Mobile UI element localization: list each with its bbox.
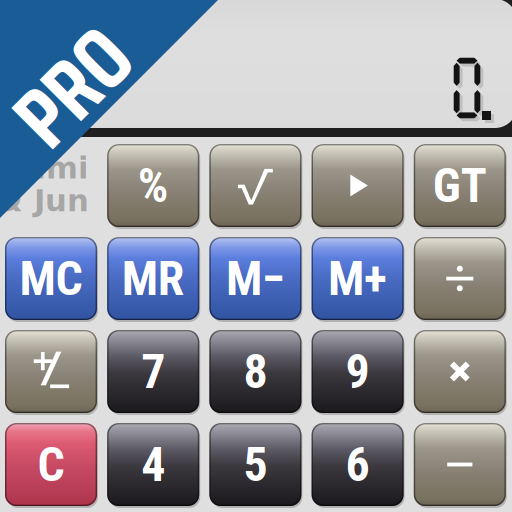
button[interactable]: MC (5, 237, 97, 320)
button[interactable]: 9 (312, 330, 404, 413)
button[interactable]: +/− (5, 330, 97, 413)
button[interactable]: 5 (209, 423, 301, 506)
staticText: Murakami (0, 150, 89, 186)
staticText: & Jun (0, 183, 89, 218)
button[interactable]: % (107, 144, 199, 227)
button[interactable]: × (414, 330, 506, 413)
staticText: M− (226, 250, 285, 307)
button[interactable]: 4 (107, 423, 199, 506)
button[interactable]: 6 (312, 423, 404, 506)
staticText: 4 (141, 436, 165, 493)
button[interactable]: MR (107, 237, 199, 320)
button[interactable]: M− (209, 237, 301, 320)
staticText: PRO (10, 20, 136, 154)
staticText: GT (433, 157, 487, 214)
button[interactable]: √ (209, 144, 301, 227)
staticText: 8 (243, 343, 267, 400)
staticText: 6 (346, 436, 370, 493)
staticText: % (138, 157, 169, 214)
button[interactable]: 7 (107, 330, 199, 413)
staticText: MR (122, 250, 185, 307)
staticText: 5 (243, 436, 267, 493)
staticText: 7 (141, 343, 165, 400)
button[interactable]: 8 (209, 330, 301, 413)
button[interactable]: Run (312, 144, 404, 227)
button[interactable]: M+ (312, 237, 404, 320)
button[interactable]: C (5, 423, 97, 506)
staticText: MC (19, 250, 82, 307)
button[interactable]: − (414, 423, 506, 506)
staticText: 9 (346, 343, 370, 400)
button[interactable]: GT (414, 144, 506, 227)
button[interactable]: ÷ (414, 237, 506, 320)
staticText: M+ (328, 250, 387, 307)
staticText: C (37, 436, 64, 493)
